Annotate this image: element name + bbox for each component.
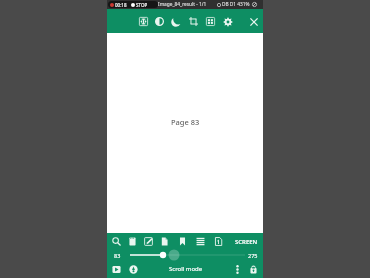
button[interactable]: Crop [186, 14, 200, 28]
button[interactable]: Stop recording [108, 1, 158, 8]
staticText: DB D1 431% [222, 1, 250, 8]
button[interactable]: Grid view [203, 14, 217, 28]
button[interactable]: Scroll mode [169, 265, 203, 273]
staticText: 00:18 [115, 2, 127, 8]
button[interactable]: Contents [193, 234, 207, 248]
button[interactable]: SCREEN [235, 237, 258, 246]
button[interactable]: Page slider [130, 249, 245, 261]
button[interactable]: Night mode [168, 14, 183, 29]
button[interactable]: Bookmark [175, 234, 189, 248]
button[interactable]: Rotate [126, 262, 140, 276]
button[interactable]: More options [230, 262, 244, 276]
staticText: 83 [114, 252, 121, 259]
staticText: Image_84_result - 1/1 [158, 1, 207, 8]
staticText: 275 [248, 252, 258, 259]
button[interactable]: Settings [220, 14, 235, 29]
button[interactable]: Brightness [152, 14, 166, 28]
button[interactable]: Annotate [141, 234, 155, 248]
button[interactable]: Fit to screen [136, 14, 150, 28]
button[interactable]: Notes [125, 234, 139, 248]
staticText: SCREEN [235, 238, 258, 246]
staticText: Page 83 [171, 117, 200, 127]
button[interactable]: Page [157, 234, 171, 248]
button[interactable]: Lock [246, 262, 260, 276]
staticText: STOP [136, 2, 148, 8]
staticText: Scroll mode [169, 265, 203, 273]
button[interactable]: Slideshow [109, 262, 123, 276]
button[interactable]: Search [109, 234, 123, 248]
button[interactable]: Close [246, 14, 261, 29]
button[interactable]: Go to page [211, 234, 225, 248]
